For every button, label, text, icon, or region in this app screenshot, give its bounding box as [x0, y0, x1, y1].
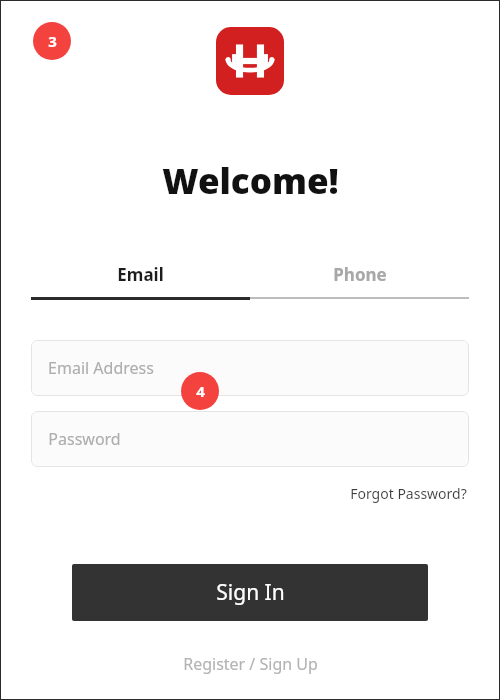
- button[interactable]: Email: [31, 263, 250, 300]
- staticText: Forgot Password?: [350, 484, 467, 503]
- button[interactable]: Register / Sign Up: [177, 649, 324, 679]
- staticText: Welcome!: [162, 157, 339, 205]
- staticText: Email: [117, 263, 164, 286]
- button[interactable]: Email Address: [31, 340, 469, 396]
- button[interactable]: Password: [31, 411, 469, 467]
- other: App logo: [227, 38, 273, 84]
- staticText: 3: [48, 31, 57, 51]
- staticText: Password: [48, 428, 121, 450]
- staticText: Phone: [333, 263, 387, 286]
- staticText: Email Address: [48, 357, 154, 379]
- staticText: 4: [196, 381, 205, 401]
- staticText: Sign In: [216, 578, 285, 607]
- staticText: Register / Sign Up: [183, 653, 318, 675]
- button[interactable]: Sign In: [72, 564, 428, 621]
- button[interactable]: Phone: [250, 263, 469, 299]
- button[interactable]: Forgot Password?: [348, 481, 469, 506]
